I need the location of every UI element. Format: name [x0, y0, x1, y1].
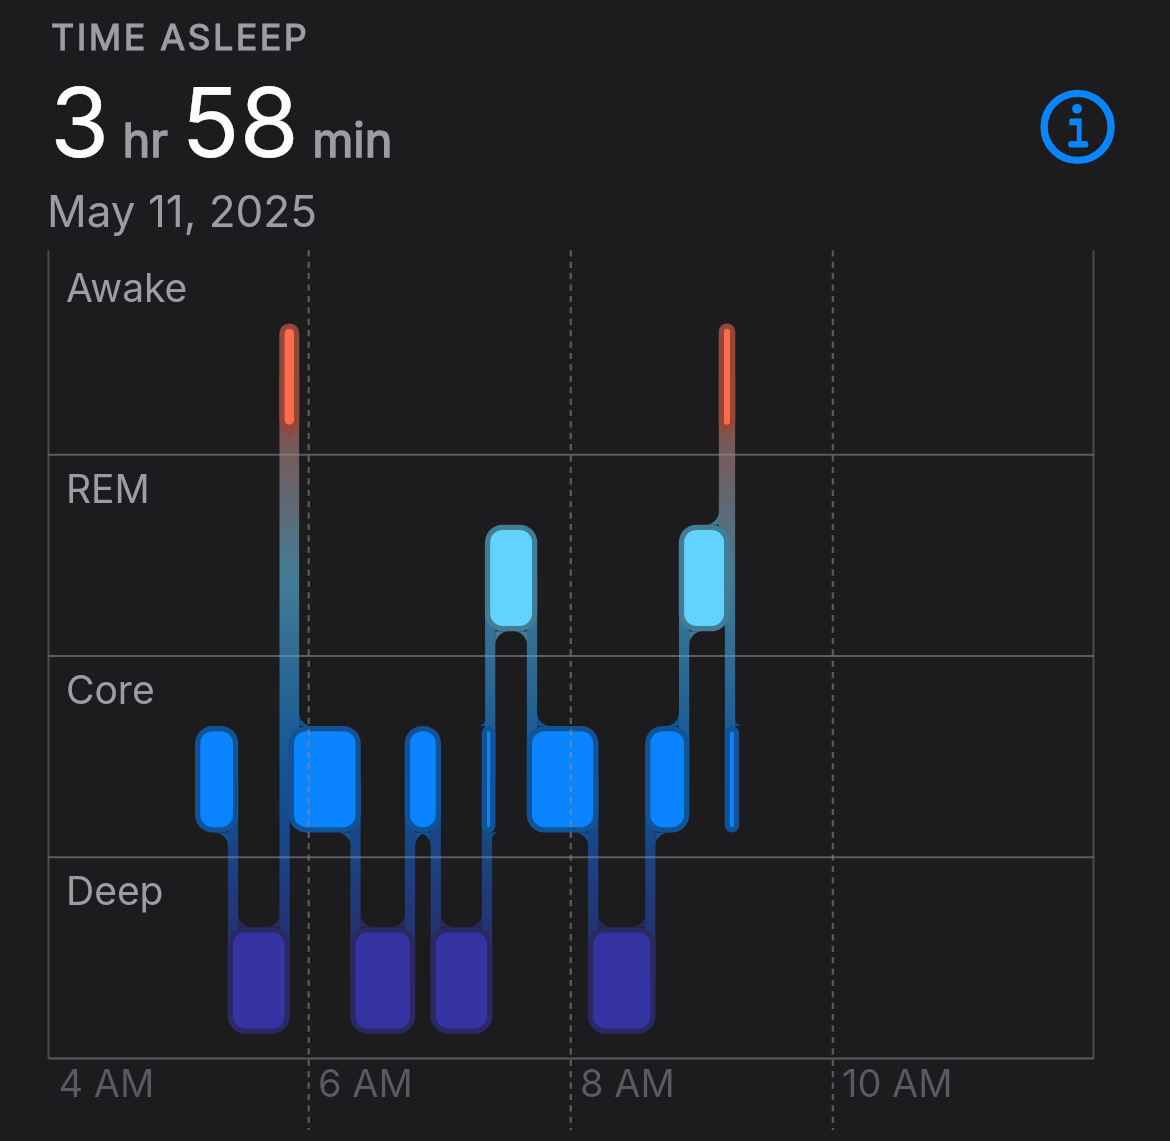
- button[interactable]: Information: [1036, 85, 1120, 169]
